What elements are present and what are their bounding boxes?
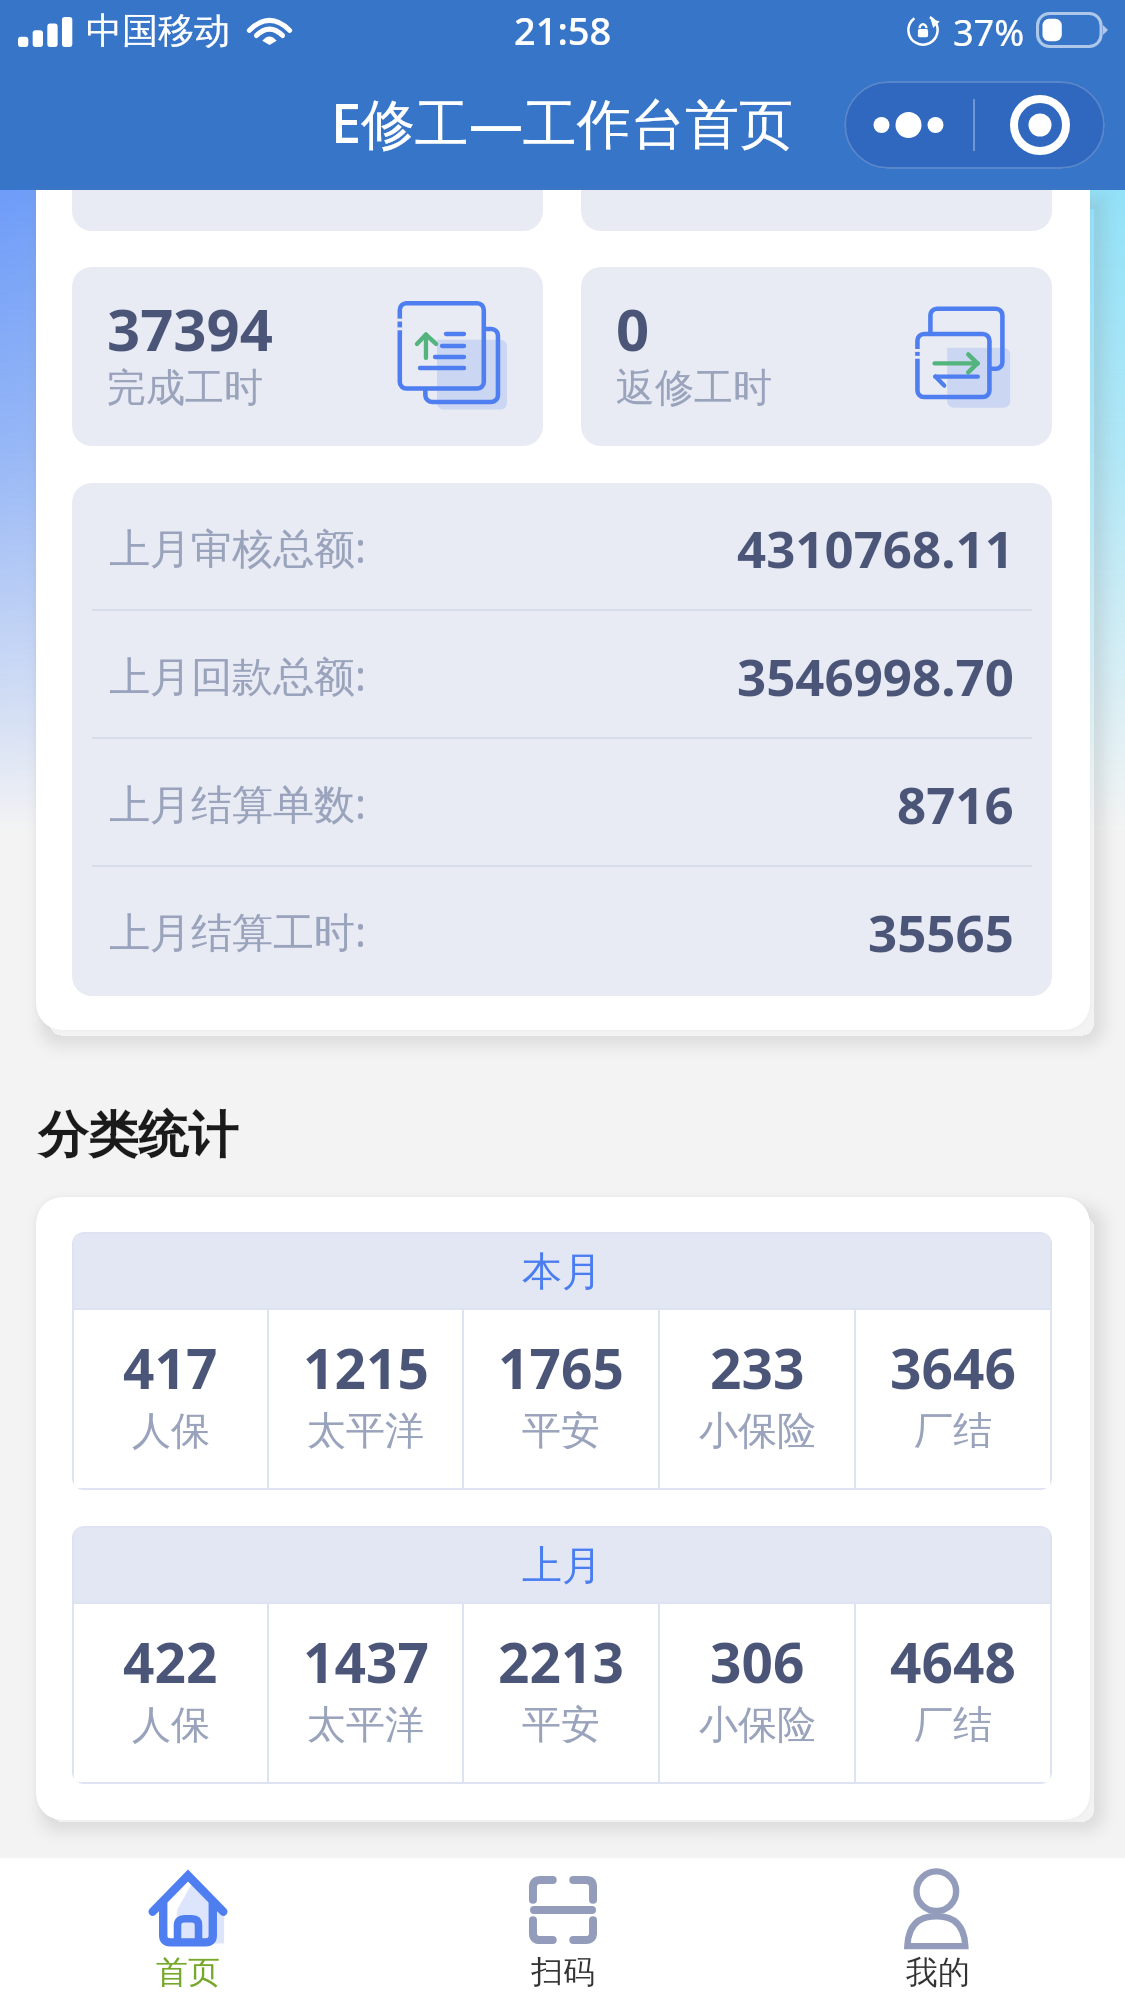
button[interactable]: 37394: [72, 267, 543, 446]
staticText: 太平洋: [307, 1700, 424, 1749]
button[interactable]: 417: [74, 1310, 267, 1488]
button[interactable]: 上月回款总额:: [72, 611, 1052, 739]
staticText: 21:58: [514, 4, 612, 56]
button[interactable]: 233: [660, 1310, 854, 1488]
staticText: 0: [616, 289, 650, 368]
staticText: 37394: [107, 289, 273, 368]
staticText: 太平洋: [307, 1406, 424, 1455]
staticText: 37%: [953, 8, 1025, 57]
button[interactable]: 上月结算单数:: [72, 739, 1052, 867]
staticText: 中国移动: [86, 8, 230, 53]
button[interactable]: 422: [74, 1604, 267, 1782]
button[interactable]: More options: [844, 81, 973, 169]
staticText: 上月审核总额:: [109, 519, 366, 575]
button[interactable]: 上月结算工时:: [72, 867, 1052, 995]
staticText: 返修工时: [616, 363, 772, 412]
button[interactable]: 1765: [464, 1310, 658, 1488]
staticText: 1437: [303, 1624, 429, 1699]
staticText: 扫码: [531, 1952, 595, 1992]
staticText: 3546998.70: [737, 641, 1014, 710]
staticText: 厂结: [914, 1406, 992, 1455]
staticText: 上月结算单数:: [109, 775, 366, 831]
staticText: 首页: [156, 1952, 220, 1992]
staticText: 上月: [522, 1540, 602, 1590]
button[interactable]: 1215: [269, 1310, 462, 1488]
staticText: 小保险: [699, 1406, 816, 1455]
staticText: 4310768.11: [737, 513, 1014, 582]
staticText: 35565: [868, 897, 1014, 966]
staticText: 人保: [132, 1700, 210, 1749]
button[interactable]: 1437: [269, 1604, 462, 1782]
staticText: 3646: [890, 1330, 1016, 1405]
button[interactable]: 我的: [750, 1858, 1125, 2001]
button[interactable]: 306: [660, 1604, 854, 1782]
staticText: 上月结算工时:: [109, 903, 366, 959]
staticText: 平安: [522, 1700, 600, 1749]
staticText: 2213: [498, 1624, 624, 1699]
button[interactable]: 上月审核总额:: [72, 483, 1052, 611]
staticText: 8716: [897, 769, 1014, 838]
staticText: 1215: [303, 1330, 429, 1405]
button[interactable]: 4648: [856, 1604, 1050, 1782]
staticText: 306: [710, 1624, 805, 1699]
staticText: 厂结: [914, 1700, 992, 1749]
button[interactable]: 0: [581, 267, 1052, 446]
staticText: 上月回款总额:: [109, 647, 366, 703]
staticText: 平安: [522, 1406, 600, 1455]
staticText: 本月: [522, 1246, 602, 1296]
staticText: E修工—工作台首页: [331, 85, 794, 159]
staticText: 人保: [132, 1406, 210, 1455]
button[interactable]: 扫码: [375, 1858, 750, 2001]
staticText: 1765: [498, 1330, 624, 1405]
staticText: 233: [710, 1330, 805, 1405]
staticText: 4648: [890, 1624, 1016, 1699]
staticText: 我的: [906, 1952, 970, 1992]
staticText: 422: [123, 1624, 218, 1699]
staticText: 小保险: [699, 1700, 816, 1749]
button[interactable]: 3646: [856, 1310, 1050, 1488]
button[interactable]: 首页: [0, 1858, 375, 2001]
button[interactable]: Close mini program: [975, 81, 1105, 169]
staticText: 分类统计: [38, 1104, 238, 1167]
button[interactable]: 2213: [464, 1604, 658, 1782]
staticText: 完成工时: [107, 363, 263, 412]
staticText: 417: [123, 1330, 218, 1405]
